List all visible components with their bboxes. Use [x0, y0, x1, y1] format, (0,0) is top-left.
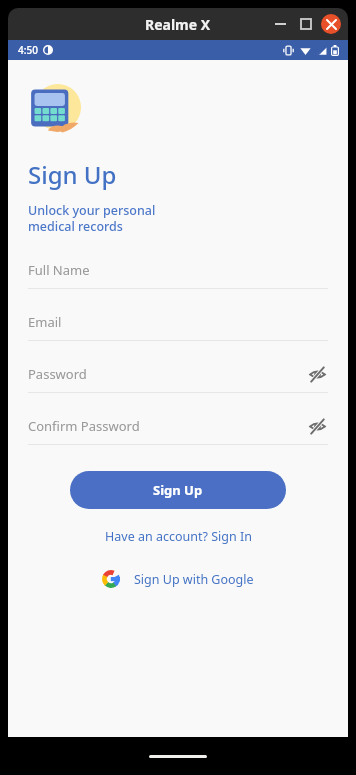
staticText: Email [28, 313, 328, 331]
button[interactable]: Have an account? Sign In [97, 523, 260, 550]
staticText: Sign Up [153, 481, 203, 499]
button[interactable]: Sign Up [70, 471, 286, 509]
staticText: 4:50 [18, 43, 38, 57]
staticText: Confirm Password [28, 417, 306, 435]
button[interactable]: Close [321, 14, 341, 34]
button[interactable]: Minimize [269, 13, 291, 35]
button[interactable]: Toggle password visibility [306, 415, 328, 437]
staticText: Sign Up [28, 158, 117, 191]
button[interactable]: Toggle password visibility [306, 363, 328, 385]
staticText: Password [28, 365, 306, 383]
staticText: Realme X [145, 15, 211, 34]
staticText: Full Name [28, 261, 328, 279]
button[interactable]: Maximize [295, 13, 317, 35]
staticText: Have an account? Sign In [105, 528, 252, 545]
staticText: Sign Up with Google [134, 571, 254, 588]
button[interactable]: Sign Up with Google [92, 565, 264, 593]
staticText: Unlock your personal medical records [28, 202, 156, 234]
